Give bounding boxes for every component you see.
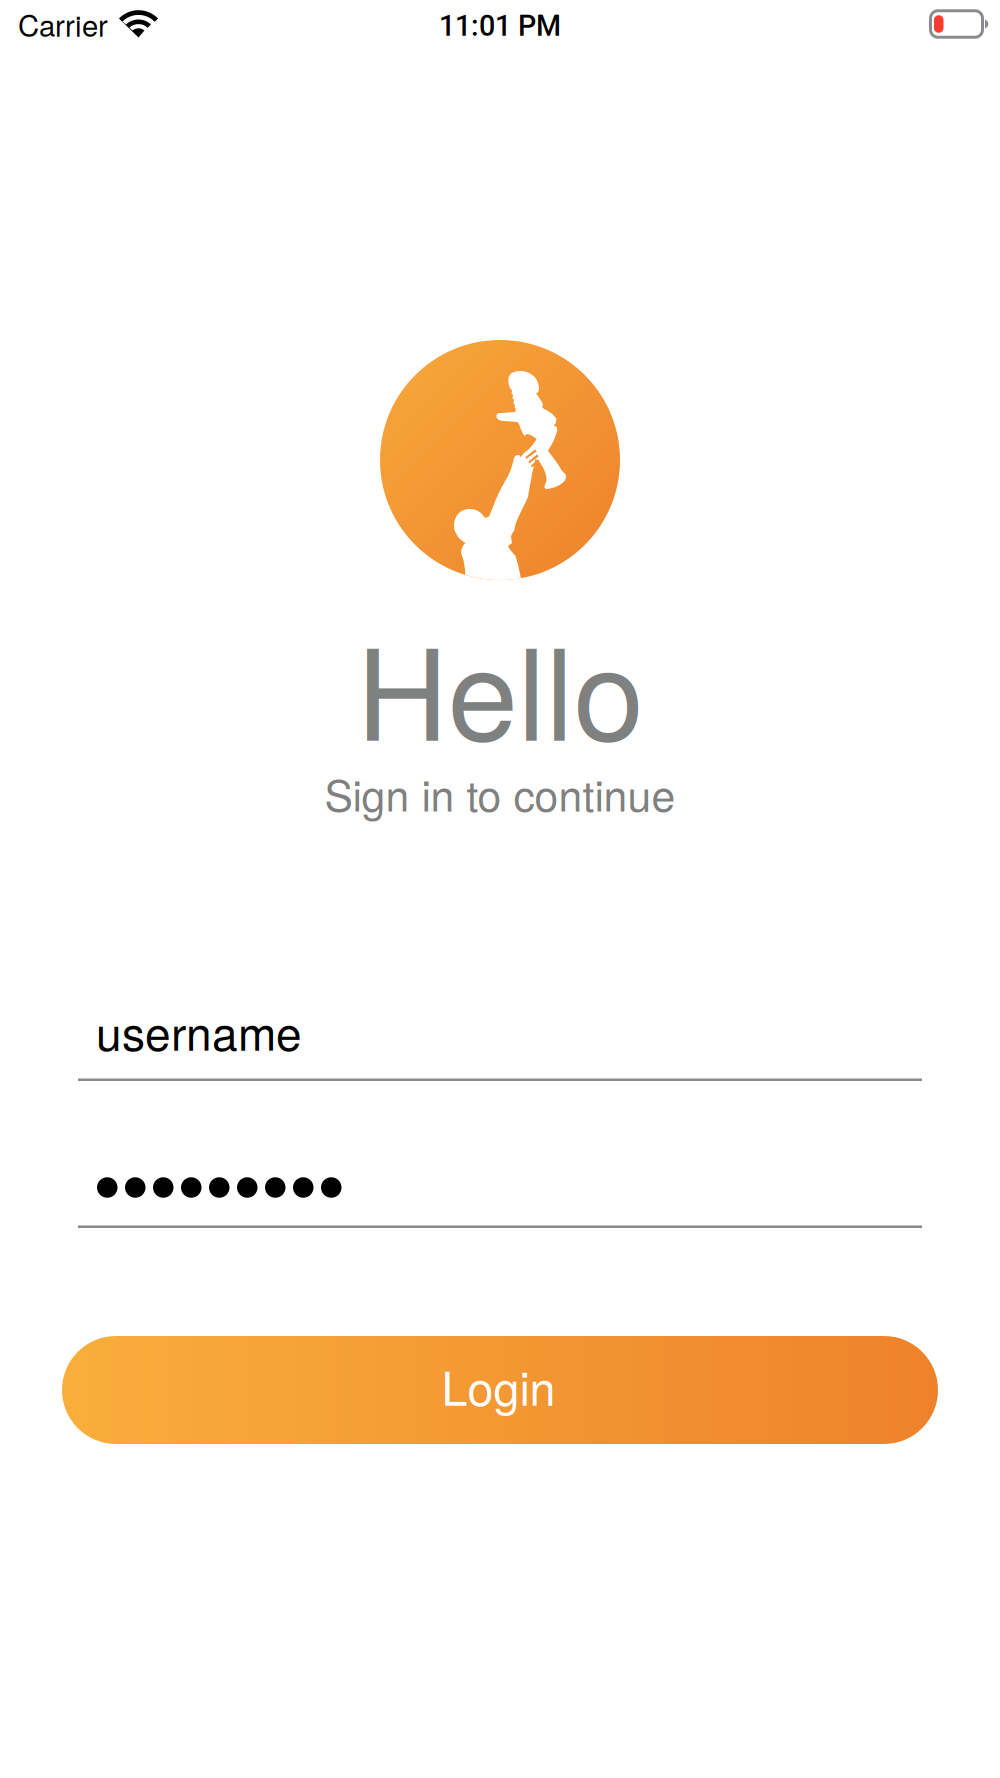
button[interactable]: Login	[62, 1336, 938, 1444]
staticText: Carrier	[18, 3, 108, 45]
staticText: username	[96, 998, 302, 1064]
staticText: Login	[441, 1352, 555, 1419]
staticText: Sign in to continue	[324, 762, 675, 824]
staticText: 11:01 PM	[439, 9, 561, 43]
staticText: Hello	[356, 595, 643, 777]
